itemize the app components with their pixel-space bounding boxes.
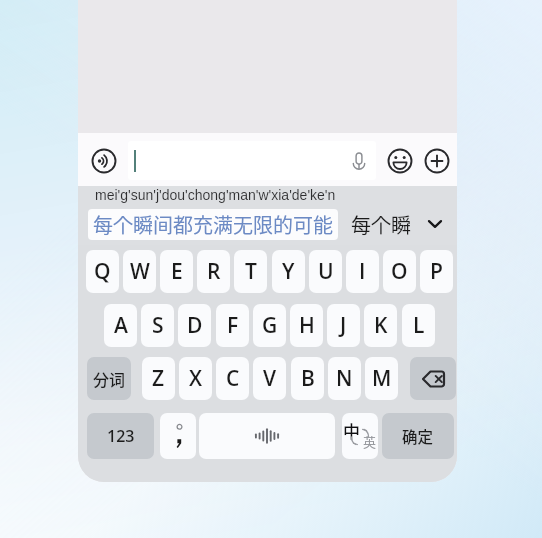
button[interactable]: R <box>197 250 230 293</box>
staticText: D <box>187 311 203 340</box>
staticText: O <box>391 257 408 286</box>
button[interactable]: Voice input <box>88 145 120 177</box>
staticText: I <box>359 257 366 286</box>
button[interactable]: U <box>309 250 342 293</box>
button[interactable]: Y <box>272 250 305 293</box>
button[interactable]: P <box>420 250 453 293</box>
staticText: F <box>227 311 239 340</box>
staticText: M <box>372 364 392 393</box>
button[interactable]: H <box>290 304 323 347</box>
staticText: Y <box>282 257 295 286</box>
staticText: P <box>430 257 443 286</box>
staticText: H <box>299 311 315 340</box>
button[interactable]: Space <box>199 413 335 459</box>
button[interactable]: M <box>365 357 398 400</box>
button[interactable]: S <box>141 304 174 347</box>
staticText: S <box>152 311 164 340</box>
button[interactable]: E <box>160 250 193 293</box>
button[interactable] <box>128 141 376 180</box>
button[interactable]: 每个瞬 <box>351 209 411 240</box>
button[interactable]: C <box>216 357 249 400</box>
staticText: 确定 <box>402 425 434 447</box>
button[interactable]: 分词 <box>87 357 131 400</box>
button[interactable]: T <box>234 250 267 293</box>
button[interactable]: D <box>178 304 211 347</box>
button[interactable]: G <box>253 304 286 347</box>
staticText: Q <box>94 257 111 286</box>
staticText: X <box>189 364 203 393</box>
button[interactable]: Expand candidates <box>419 208 451 240</box>
button[interactable]: L <box>402 304 435 347</box>
staticText: N <box>336 364 353 393</box>
button[interactable]: Emoji <box>384 145 416 177</box>
staticText: 英 <box>363 432 377 451</box>
staticText: J <box>340 311 347 340</box>
staticText: K <box>374 311 388 340</box>
staticText: mei'g'sun'j'dou'chong'man'w'xia'de'ke'n <box>95 187 336 203</box>
button[interactable]: F <box>216 304 249 347</box>
button[interactable]: Switch Chinese English input <box>342 413 378 459</box>
button[interactable]: V <box>253 357 286 400</box>
button[interactable]: B <box>291 357 324 400</box>
staticText: C <box>226 364 240 393</box>
staticText: E <box>171 257 183 286</box>
staticText: 中 <box>343 418 360 443</box>
button[interactable]: 确定 <box>382 413 454 459</box>
button[interactable]: More options <box>421 145 453 177</box>
button[interactable]: Backspace <box>410 357 456 400</box>
staticText: A <box>114 311 128 340</box>
staticText: 每个瞬 <box>351 210 411 239</box>
staticText: G <box>262 311 278 340</box>
button[interactable]: Q <box>86 250 119 293</box>
button[interactable]: Punctuation <box>160 413 196 459</box>
button[interactable]: Z <box>142 357 175 400</box>
staticText: W <box>130 257 150 286</box>
button[interactable]: J <box>327 304 360 347</box>
staticText: Z <box>152 364 165 393</box>
staticText: 123 <box>107 425 135 447</box>
button[interactable]: X <box>179 357 212 400</box>
staticText: 每个瞬间都充满无限的可能 <box>93 210 333 239</box>
staticText: R <box>207 257 221 286</box>
staticText: T <box>245 257 257 286</box>
button[interactable]: I <box>346 250 379 293</box>
button[interactable]: N <box>328 357 361 400</box>
staticText: L <box>413 311 425 340</box>
button[interactable]: 每个瞬间都充满无限的可能 <box>88 209 338 240</box>
staticText: 分词 <box>93 367 126 390</box>
button[interactable]: A <box>104 304 137 347</box>
button[interactable]: O <box>383 250 416 293</box>
button[interactable]: K <box>364 304 397 347</box>
staticText: V <box>263 364 277 393</box>
button[interactable]: W <box>123 250 156 293</box>
button[interactable]: Voice message <box>343 145 375 177</box>
staticText: B <box>301 364 315 393</box>
button[interactable]: 123 <box>87 413 154 459</box>
staticText: U <box>318 257 334 286</box>
